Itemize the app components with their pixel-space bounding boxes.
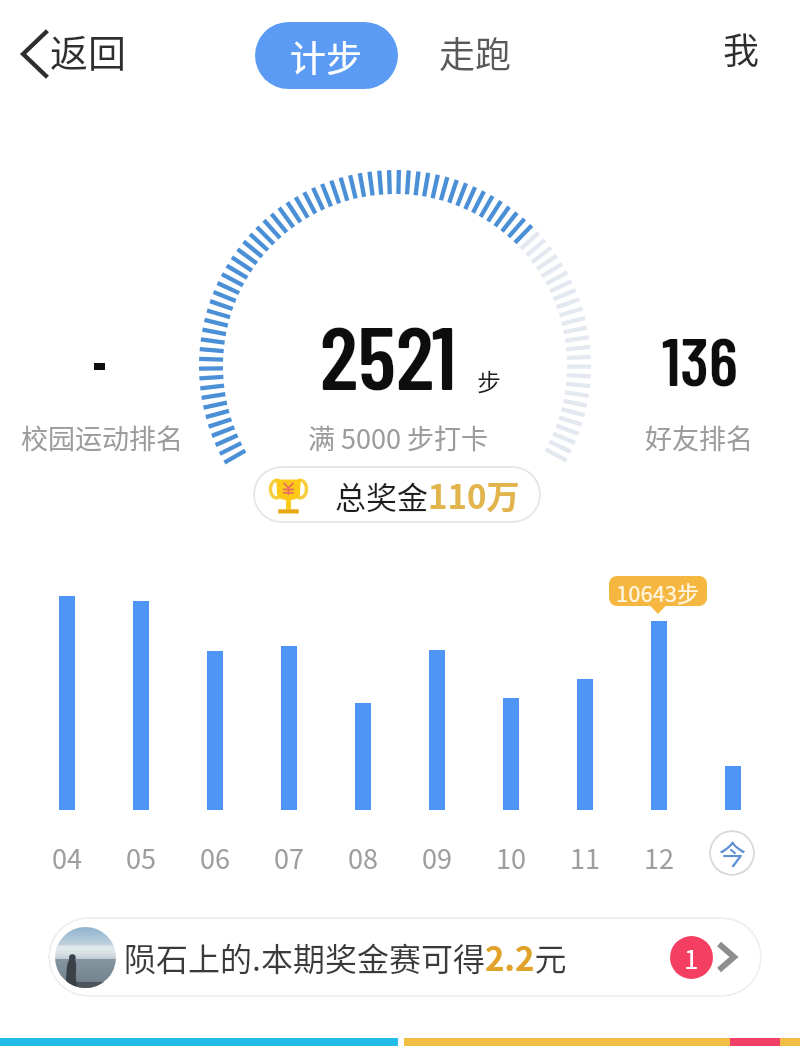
staticText: 返回 [50, 23, 127, 78]
staticText: 1 [684, 939, 699, 977]
staticText: 走跑 [439, 26, 512, 78]
button[interactable]: 走跑 [431, 20, 520, 84]
staticText: 136 [662, 319, 738, 399]
button[interactable]: 今 [709, 830, 755, 876]
button[interactable]: 计步 [255, 22, 398, 89]
staticText: 好友排名 [645, 418, 753, 457]
staticText: 05 [126, 838, 156, 877]
button[interactable]: Back [14, 20, 131, 87]
staticText: 09 [422, 838, 452, 877]
staticText: 校园运动排名 [21, 418, 183, 457]
staticText: 07 [274, 838, 304, 877]
staticText: 11 [570, 838, 600, 877]
staticText: 陨石上的.本期奖金赛可得2.2元 [124, 933, 567, 981]
button[interactable]: 我 [715, 16, 768, 80]
other: Back [18, 27, 50, 81]
staticText: 08 [348, 838, 378, 877]
staticText: 12 [644, 838, 674, 877]
staticText: 我 [723, 22, 760, 74]
staticText: 满 5000 步打卡 [308, 418, 489, 457]
staticText: 今 [719, 834, 746, 873]
staticText: 10643步 [616, 576, 700, 606]
staticText: 04 [52, 838, 82, 877]
staticText: 10 [496, 838, 526, 877]
other: Open [716, 941, 737, 973]
staticText: 步 [477, 363, 501, 398]
staticText: 总奖金110万 [335, 471, 520, 519]
button[interactable]: 陨石上的.本期奖金赛可得2.2元 [48, 917, 762, 997]
button[interactable]: 总奖金110万 [253, 466, 541, 523]
staticText: 06 [200, 838, 230, 877]
staticText: 计步 [290, 30, 363, 82]
staticText: 2521 [320, 301, 457, 408]
